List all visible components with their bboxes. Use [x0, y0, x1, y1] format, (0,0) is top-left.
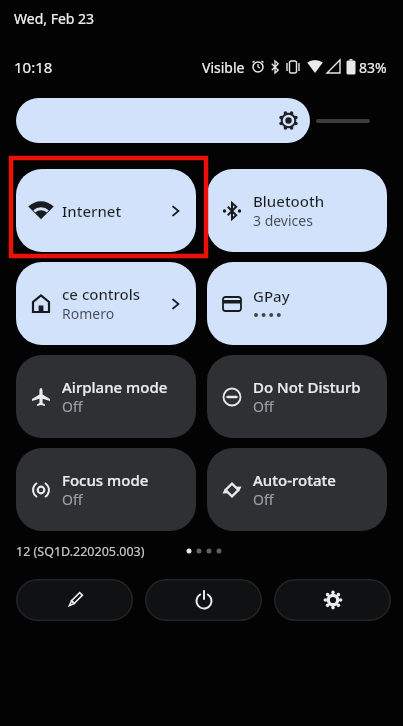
staticText: Do Not Disturb: [253, 377, 361, 397]
button[interactable]: [145, 579, 262, 621]
staticText: ce controls: [62, 284, 141, 304]
staticText: Focus mode: [62, 470, 149, 490]
staticText: Airplane mode: [62, 377, 168, 397]
staticText: Off: [253, 397, 274, 416]
staticText: Off: [253, 490, 274, 509]
staticText: 83%: [359, 58, 387, 77]
button[interactable]: [16, 579, 133, 621]
staticText: Internet: [62, 201, 122, 221]
staticText: Off: [62, 490, 83, 509]
button[interactable]: GPay: [207, 262, 387, 345]
staticText: 3 devices: [253, 211, 313, 230]
staticText: Auto-rotate: [253, 470, 336, 490]
staticText: 10:18: [14, 57, 53, 77]
button[interactable]: Internet: [16, 169, 196, 252]
staticText: GPay: [253, 286, 290, 306]
button[interactable]: Focus mode: [16, 448, 196, 531]
button[interactable]: Airplane mode: [16, 355, 196, 438]
staticText: Visible: [202, 58, 245, 77]
staticText: 12 (SQ1D.220205.003): [16, 543, 145, 560]
staticText: Off: [62, 397, 83, 416]
staticText: Wed, Feb 23: [14, 9, 95, 28]
staticText: Bluetooth: [253, 191, 325, 211]
button[interactable]: Auto-rotate: [207, 448, 387, 531]
button[interactable]: ce controls: [16, 262, 196, 345]
button[interactable]: [274, 579, 391, 621]
button[interactable]: Do Not Disturb: [207, 355, 387, 438]
staticText: Romero: [62, 304, 115, 323]
button[interactable]: Bluetooth: [207, 169, 387, 252]
button[interactable]: [16, 98, 310, 143]
